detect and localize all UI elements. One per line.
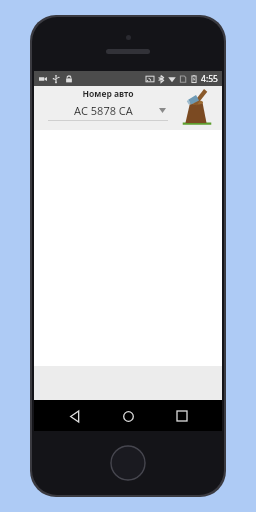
button[interactable]: Home <box>114 402 142 430</box>
staticText: 4:55 <box>201 73 218 85</box>
button[interactable]: Back <box>60 402 88 430</box>
button[interactable]: Logo <box>180 91 214 125</box>
staticText: Номер авто <box>82 88 134 100</box>
staticText: АС 5878 СА <box>74 103 133 118</box>
button[interactable]: Номер авто <box>48 88 168 121</box>
button[interactable]: Recents <box>168 402 196 430</box>
